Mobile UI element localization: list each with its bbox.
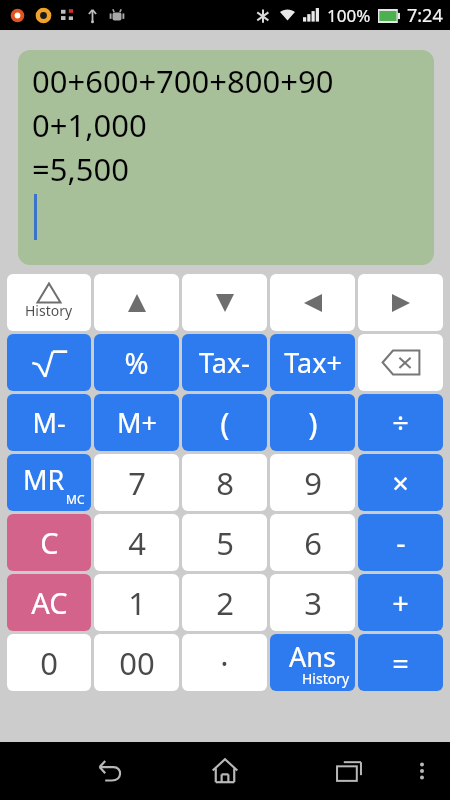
staticText: ×	[392, 463, 409, 502]
staticText: M-	[32, 404, 66, 441]
staticText: (	[220, 402, 230, 444]
button[interactable]: M+	[94, 394, 179, 451]
button[interactable]: MR	[7, 454, 91, 511]
button[interactable]: 00	[94, 634, 179, 691]
staticText: History	[302, 669, 350, 688]
staticText: AC	[31, 583, 68, 622]
staticText: 0	[40, 642, 58, 684]
staticText: M+	[117, 404, 157, 441]
button[interactable]: More options	[402, 751, 442, 791]
button[interactable]: Square root	[7, 334, 91, 391]
staticText: 7:24	[407, 3, 443, 28]
staticText: Tax-	[199, 344, 250, 381]
staticText: -	[396, 523, 406, 562]
button[interactable]: 2	[182, 574, 267, 631]
button[interactable]: %	[94, 334, 179, 391]
button[interactable]: History	[7, 274, 91, 331]
button[interactable]: 1	[94, 574, 179, 631]
button[interactable]: AC	[7, 574, 91, 631]
staticText: 4	[128, 522, 146, 564]
button[interactable]: C	[7, 514, 91, 571]
staticText: ·	[220, 642, 229, 684]
button[interactable]: =	[358, 634, 443, 691]
staticText: C	[40, 523, 59, 562]
staticText: MR	[23, 461, 65, 498]
button[interactable]: 9	[270, 454, 355, 511]
staticText: MC	[66, 491, 85, 507]
button[interactable]: 6	[270, 514, 355, 571]
button[interactable]: Move left	[270, 274, 355, 331]
button[interactable]: +	[358, 574, 443, 631]
button[interactable]: ×	[358, 454, 443, 511]
staticText: Tax+	[284, 344, 342, 381]
button[interactable]: Back	[85, 748, 131, 794]
staticText: =	[392, 643, 409, 682]
staticText: ÷	[392, 403, 409, 442]
button[interactable]: Tax+	[270, 334, 355, 391]
button[interactable]: Recent apps	[326, 748, 372, 794]
button[interactable]: ÷	[358, 394, 443, 451]
staticText: 100%	[327, 4, 371, 27]
staticText: 3	[304, 582, 322, 624]
staticText: 5	[216, 522, 234, 564]
staticText: 1	[128, 582, 146, 624]
button[interactable]: )	[270, 394, 355, 451]
staticText: )	[308, 402, 318, 444]
staticText: 0+1,000	[32, 104, 147, 146]
staticText: History	[25, 301, 73, 320]
button[interactable]: 5	[182, 514, 267, 571]
button[interactable]: 7	[94, 454, 179, 511]
staticText: 2	[216, 582, 234, 624]
button[interactable]: ·	[182, 634, 267, 691]
staticText: %	[124, 343, 149, 382]
button[interactable]: 8	[182, 454, 267, 511]
staticText: 6	[304, 522, 322, 564]
staticText: 8	[216, 462, 234, 504]
button[interactable]: Move right	[358, 274, 443, 331]
staticText: 00+600+700+800+90	[32, 60, 334, 102]
staticText: +	[392, 583, 409, 622]
staticText: =5,500	[32, 148, 129, 190]
button[interactable]: 4	[94, 514, 179, 571]
button[interactable]: Scroll down	[182, 274, 267, 331]
button[interactable]: M-	[7, 394, 91, 451]
button[interactable]: Scroll up	[94, 274, 179, 331]
button[interactable]: Tax-	[182, 334, 267, 391]
button[interactable]: Home	[202, 748, 248, 794]
staticText: 00	[119, 642, 155, 684]
button[interactable]: 3	[270, 574, 355, 631]
button[interactable]: -	[358, 514, 443, 571]
staticText: Ans	[289, 638, 336, 675]
staticText: 7	[128, 462, 146, 504]
button[interactable]: Backspace	[358, 334, 443, 391]
button[interactable]: Ans	[270, 634, 355, 691]
staticText: 9	[304, 462, 322, 504]
button[interactable]: (	[182, 394, 267, 451]
button[interactable]: 0	[7, 634, 91, 691]
